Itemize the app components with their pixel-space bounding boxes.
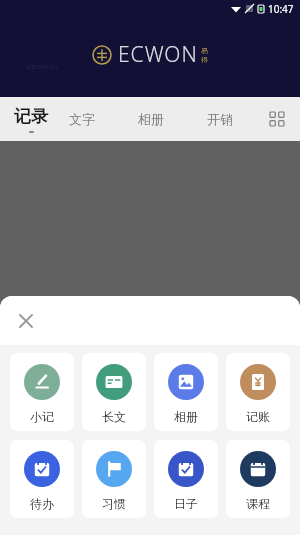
staticText: 日子 <box>174 496 198 511</box>
staticText: 记录 <box>14 106 48 127</box>
button[interactable]: 记录 <box>14 106 48 133</box>
button[interactable]: 课程 <box>226 440 290 518</box>
staticText: 相册 <box>138 111 164 127</box>
button[interactable]: Close <box>13 308 39 334</box>
button[interactable]: 小记 <box>10 353 74 431</box>
button[interactable]: 长文 <box>82 353 146 431</box>
button[interactable]: 记账 <box>226 353 290 431</box>
button[interactable]: 开销 <box>185 97 254 141</box>
button[interactable]: 文字 <box>48 97 116 141</box>
staticText: 小记 <box>30 409 54 424</box>
staticText: 易 <box>201 46 208 55</box>
staticText: 课程 <box>246 496 270 511</box>
button[interactable]: More views <box>254 97 300 141</box>
button[interactable]: 日子 <box>154 440 218 518</box>
staticText: @ECWON.2 <box>26 63 59 71</box>
staticText: 文字 <box>69 111 95 127</box>
staticText: 开销 <box>207 111 233 127</box>
staticText: 习惯 <box>102 496 126 511</box>
staticText: ECWON <box>118 40 198 69</box>
button[interactable]: 待办 <box>10 440 74 518</box>
staticText: 得 <box>201 55 208 64</box>
staticText: 相册 <box>174 409 198 424</box>
button[interactable]: 习惯 <box>82 440 146 518</box>
staticText: 长文 <box>102 409 126 424</box>
button[interactable]: 相册 <box>154 353 218 431</box>
button[interactable]: 相册 <box>116 97 185 141</box>
staticText: 10:47 <box>268 2 294 16</box>
staticText: 记账 <box>246 409 270 424</box>
staticText: 待办 <box>30 496 54 511</box>
